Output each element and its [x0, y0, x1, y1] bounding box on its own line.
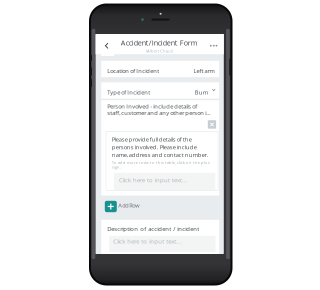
staticText: Person Involved - include details of: [107, 102, 197, 110]
staticText: Please provide full details of the: [112, 135, 192, 143]
button[interactable]: Add Row: [105, 201, 142, 212]
staticText: To add more rows to this table, click on…: [112, 159, 210, 165]
button[interactable]: Back: [101, 41, 114, 56]
staticText: Description of accident / incident: [107, 225, 199, 233]
staticText: Left arm: [194, 67, 215, 75]
staticText: Burn: [195, 88, 209, 96]
staticText: Click here to input text...: [113, 237, 182, 245]
staticText: (Albert Chips): [146, 48, 173, 54]
button[interactable]: More options: [208, 39, 222, 52]
button[interactable]: Type of Incident: [101, 82, 219, 99]
staticText: Add Row: [118, 202, 139, 209]
staticText: Location of Incident: [107, 67, 159, 75]
staticText: Accident/Incident Form: [121, 38, 198, 48]
button[interactable]: Remove row: [208, 120, 216, 129]
staticText: sign.: [112, 164, 121, 170]
staticText: Click here to input text...: [119, 176, 188, 184]
staticText: persons involved. Please include: [112, 143, 197, 151]
button[interactable]: Click here to input text...: [109, 236, 215, 252]
staticText: Type of Incident: [107, 88, 150, 96]
staticText: name, address and contact number.: [112, 151, 209, 159]
button[interactable]: Click here to input text...: [114, 173, 215, 190]
button[interactable]: Location of Incident: [101, 61, 219, 77]
staticText: staff, customer and any other person i…: [107, 109, 210, 117]
